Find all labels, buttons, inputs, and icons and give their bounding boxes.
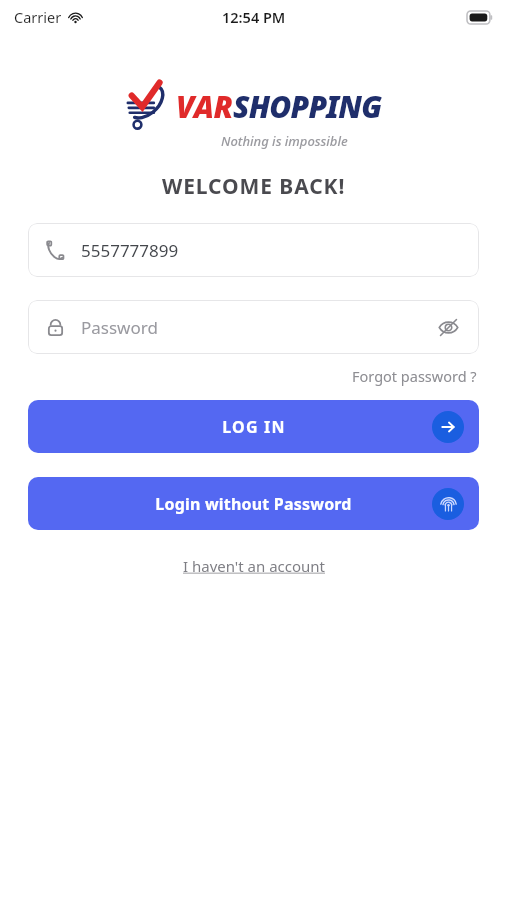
staticText: 5557777899 [81, 239, 461, 262]
staticText: SHOPPING [233, 86, 382, 127]
button[interactable]: Login without password using fingerprint [28, 477, 479, 530]
staticText: WELCOME BACK! [162, 172, 346, 201]
staticText: I haven't an account [183, 556, 325, 576]
staticText: Password [81, 316, 436, 339]
staticText: 12:54 PM [222, 7, 286, 27]
staticText: Nothing is impossible [221, 132, 348, 150]
staticText: Forgot password ? [352, 366, 477, 386]
button[interactable]: Show password [436, 315, 461, 340]
button[interactable]: Forgot password ? [350, 364, 479, 388]
staticText: Carrier [14, 7, 62, 27]
button[interactable]: Log in [28, 400, 479, 453]
button[interactable]: I haven't an account [177, 552, 331, 580]
button[interactable]: 5557777899 [28, 223, 479, 277]
staticText: Login without Password [155, 493, 352, 515]
staticText: VAR [176, 86, 233, 127]
staticText: LOG IN [222, 416, 286, 438]
button[interactable]: Password [28, 300, 479, 354]
